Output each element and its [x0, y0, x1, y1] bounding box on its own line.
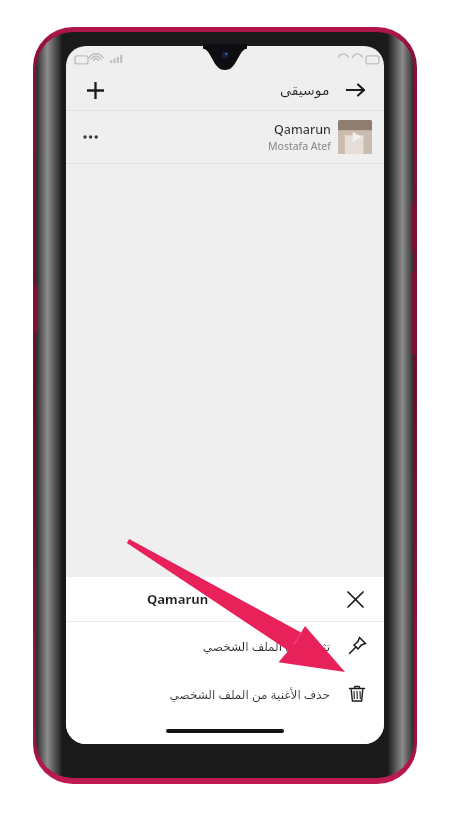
staticText: Qamarun — [147, 590, 209, 608]
button[interactable]: حذف الأغنية من الملف الشخصي — [66, 670, 384, 718]
staticText: تثبيت في الملف الشخصي — [202, 638, 330, 654]
button[interactable]: Back — [340, 75, 370, 105]
staticText: Mostafa Atef — [268, 139, 331, 153]
button[interactable]: Add — [80, 75, 110, 105]
staticText: Qamarun — [274, 121, 331, 138]
button[interactable]: Close — [340, 584, 370, 614]
button[interactable]: More options — [78, 124, 104, 150]
staticText: موسيقى — [280, 82, 330, 98]
button[interactable]: More options — [66, 111, 384, 163]
button[interactable]: تثبيت في الملف الشخصي — [66, 622, 384, 670]
staticText: حذف الأغنية من الملف الشخصي — [169, 686, 330, 702]
